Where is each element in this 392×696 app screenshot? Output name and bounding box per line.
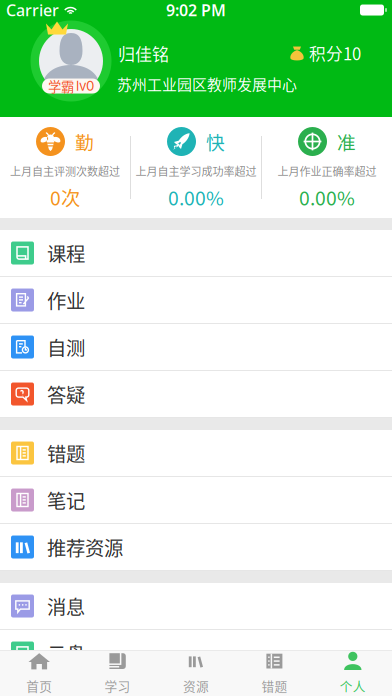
- button[interactable]: 笔记: [0, 477, 392, 524]
- button[interactable]: 作业: [0, 277, 392, 324]
- staticText: 学霸: [48, 76, 74, 96]
- staticText: 0次: [50, 183, 80, 211]
- staticText: 勤: [75, 128, 94, 155]
- button[interactable]: 资源: [157, 650, 235, 696]
- staticText: Carrier: [6, 0, 59, 21]
- staticText: 作业: [47, 286, 85, 314]
- button[interactable]: 个人: [314, 650, 392, 696]
- staticText: 归佳铭: [118, 41, 169, 66]
- staticText: 错题: [261, 677, 287, 695]
- button[interactable]: 推荐资源: [0, 524, 392, 571]
- staticText: 0.00%: [299, 183, 355, 211]
- staticText: 准: [337, 128, 356, 155]
- staticText: 云盘: [47, 639, 85, 667]
- staticText: 上月自主学习成功率超过: [135, 163, 256, 179]
- staticText: 答疑: [47, 380, 85, 408]
- staticText: 笔记: [47, 486, 85, 514]
- staticText: 课程: [47, 239, 85, 267]
- staticText: 资源: [183, 677, 209, 695]
- staticText: 积分10: [309, 41, 361, 65]
- button[interactable]: 消息: [0, 583, 392, 630]
- staticText: 0.00%: [168, 183, 224, 211]
- staticText: 错题: [47, 439, 85, 467]
- staticText: 推荐资源: [47, 533, 123, 561]
- button[interactable]: 课程: [0, 230, 392, 277]
- button[interactable]: 首页: [0, 650, 78, 696]
- staticText: 首页: [26, 677, 52, 695]
- staticText: 上月自主评测次数超过: [10, 163, 120, 179]
- staticText: 个人: [340, 677, 366, 695]
- button[interactable]: 学习: [78, 650, 157, 696]
- staticText: 快: [206, 128, 225, 155]
- staticText: lv0: [76, 78, 94, 94]
- staticText: 上月作业正确率超过: [277, 163, 376, 179]
- staticText: 9:02 PM: [166, 0, 226, 21]
- button[interactable]: 错题: [235, 650, 314, 696]
- staticText: 自测: [47, 333, 85, 361]
- button[interactable]: 答疑: [0, 371, 392, 418]
- button[interactable]: 错题: [0, 430, 392, 477]
- staticText: 学习: [105, 677, 131, 695]
- staticText: 消息: [47, 592, 85, 620]
- button[interactable]: 云盘: [0, 630, 392, 677]
- button[interactable]: 自测: [0, 324, 392, 371]
- staticText: 苏州工业园区教师发展中心: [117, 73, 297, 95]
